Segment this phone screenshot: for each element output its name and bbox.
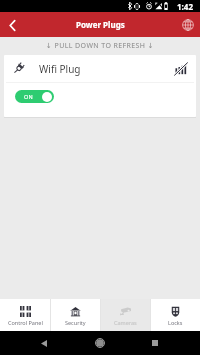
staticText: Wifi Plug [39, 62, 81, 76]
button[interactable]: ON [15, 90, 54, 103]
button[interactable]: Language [176, 13, 200, 37]
button[interactable]: Back [0, 13, 24, 37]
staticText: Power Plugs [76, 19, 125, 30]
button[interactable]: Back [36, 331, 52, 355]
button[interactable]: Control Panel [0, 299, 50, 331]
staticText: 1:42 [177, 1, 193, 12]
button[interactable]: Home [92, 331, 108, 355]
button[interactable]: Security [51, 299, 100, 331]
button[interactable]: Cameras [101, 299, 150, 331]
staticText: Cameras [114, 319, 137, 326]
staticText: Control Panel [8, 319, 43, 326]
staticText: Locks [168, 319, 183, 326]
button[interactable]: Wifi Plug [4, 55, 196, 117]
staticText: ↓ PULL DOWN TO REFRESH ↓ [0, 41, 200, 51]
button[interactable]: Recents [147, 331, 163, 355]
button[interactable]: Locks [151, 299, 200, 331]
staticText: ON [24, 93, 34, 100]
staticText: Security [65, 319, 86, 326]
